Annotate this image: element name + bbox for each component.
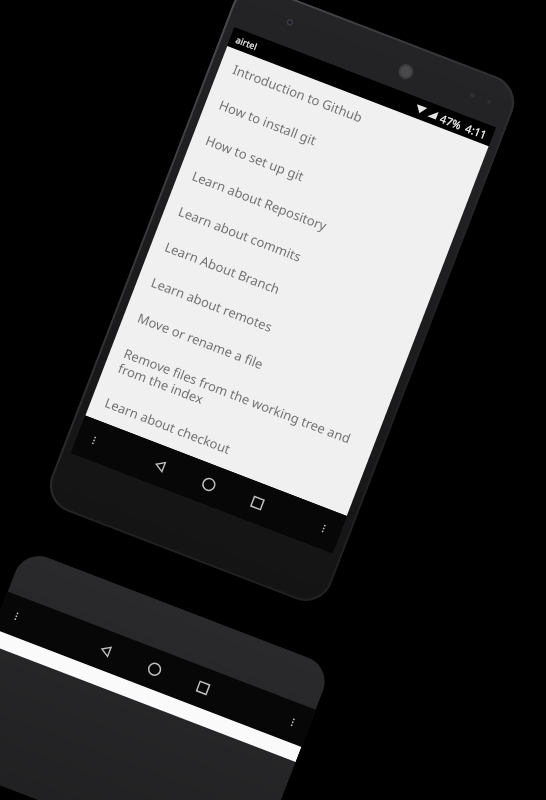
staticText: Learn about remotes <box>149 273 275 336</box>
staticText: How to set up git <box>203 131 307 185</box>
button[interactable]: Learn About Branch <box>146 223 421 359</box>
button[interactable]: More options <box>315 519 333 538</box>
button[interactable]: Learn about commits <box>159 188 434 324</box>
button[interactable]: Learn about checkout <box>86 379 361 515</box>
button[interactable]: Home <box>195 470 223 499</box>
button[interactable]: Recents <box>189 674 217 702</box>
staticText: Learn about commits <box>176 202 304 266</box>
staticText: 4:11 <box>463 120 489 142</box>
staticText: 47% <box>438 111 464 133</box>
button[interactable]: Remove files from the working tree and f… <box>99 330 380 479</box>
staticText: airtel <box>234 33 259 52</box>
staticText: How to install git <box>217 96 319 149</box>
staticText: Learn about checkout <box>102 394 233 458</box>
button[interactable]: Move or rename a file <box>118 294 393 430</box>
button[interactable]: Back <box>146 452 174 480</box>
button[interactable]: Recents <box>243 489 272 517</box>
staticText: Move or rename a file <box>135 309 267 373</box>
staticText: Introduction to Github <box>230 60 366 127</box>
button[interactable]: Menu <box>7 607 25 625</box>
button[interactable]: Learn about remotes <box>132 259 407 395</box>
button[interactable]: Menu <box>85 431 103 449</box>
button[interactable]: Home <box>140 655 169 683</box>
staticText: Learn about Repository <box>189 167 329 235</box>
button[interactable]: Back <box>92 636 120 665</box>
staticText: Remove files from the working tree and f… <box>116 344 363 465</box>
button[interactable]: Introduction to Github <box>214 46 489 182</box>
button[interactable]: More options <box>284 713 302 731</box>
button[interactable]: How to install git <box>200 81 475 217</box>
staticText: Learn About Branch <box>162 238 282 298</box>
button[interactable]: Learn about Repository <box>173 152 448 288</box>
button[interactable]: How to set up git <box>186 117 461 253</box>
